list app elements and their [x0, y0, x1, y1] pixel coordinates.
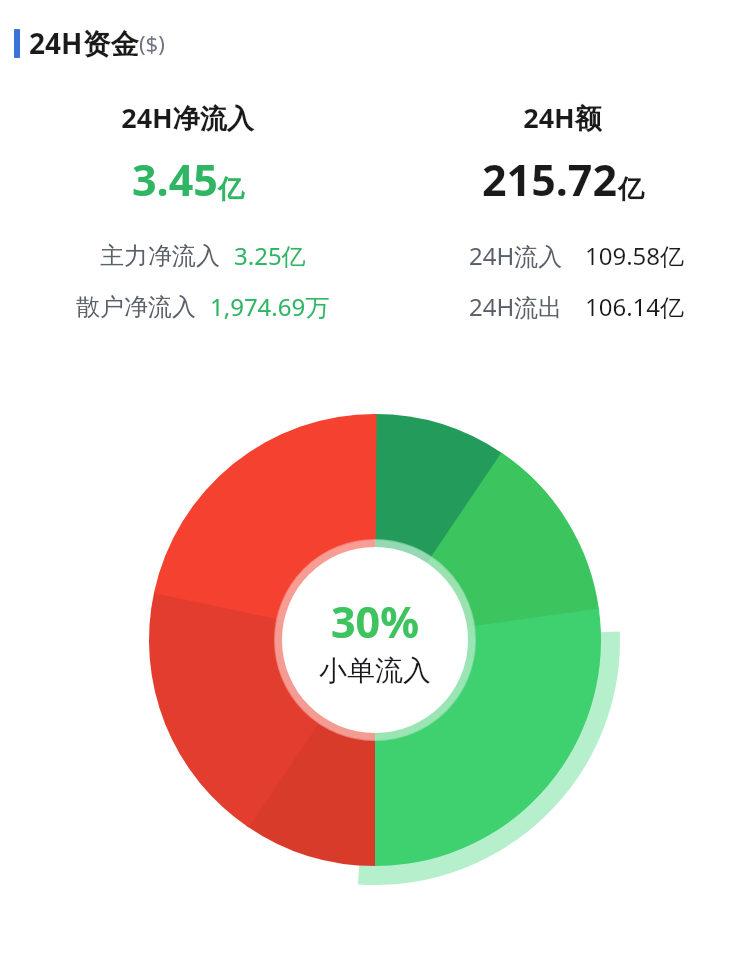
staticText: 3.25亿	[234, 239, 306, 272]
button[interactable]: 资金流向占比环形图	[140, 405, 610, 875]
staticText: 小单流入	[319, 653, 431, 688]
button[interactable]: 24H额	[375, 99, 750, 323]
staticText: 109.58亿	[585, 239, 685, 272]
staticText: 24H流出	[469, 290, 563, 323]
staticText: 24H资金	[29, 24, 139, 62]
staticText: 24H额	[523, 99, 602, 136]
staticText: 24H净流入	[121, 99, 254, 136]
staticText: 亿	[618, 173, 644, 206]
staticText: ($)	[139, 28, 165, 58]
staticText: 主力净流入	[100, 241, 220, 271]
staticText: 亿	[218, 173, 244, 206]
staticText: 1,974.69万	[210, 290, 330, 323]
staticText: 24H流入	[469, 239, 563, 272]
staticText: 散户净流入	[76, 292, 196, 322]
staticText: 106.14亿	[585, 290, 685, 323]
staticText: 30%	[331, 592, 419, 651]
staticText: 3.45	[132, 150, 218, 209]
button[interactable]: 24H净流入	[0, 99, 375, 323]
button[interactable]: 24H资金	[0, 24, 750, 62]
staticText: 215.72	[482, 150, 618, 209]
